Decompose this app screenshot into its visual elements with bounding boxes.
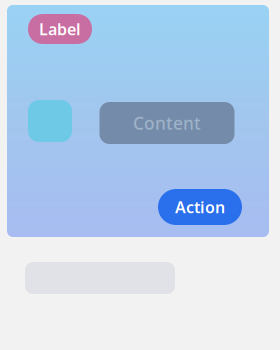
button[interactable]: Label <box>28 14 92 44</box>
staticText: Label <box>39 18 81 40</box>
staticText: Content <box>133 111 201 134</box>
staticText: Action <box>175 196 225 218</box>
button[interactable]: Action <box>158 189 242 225</box>
